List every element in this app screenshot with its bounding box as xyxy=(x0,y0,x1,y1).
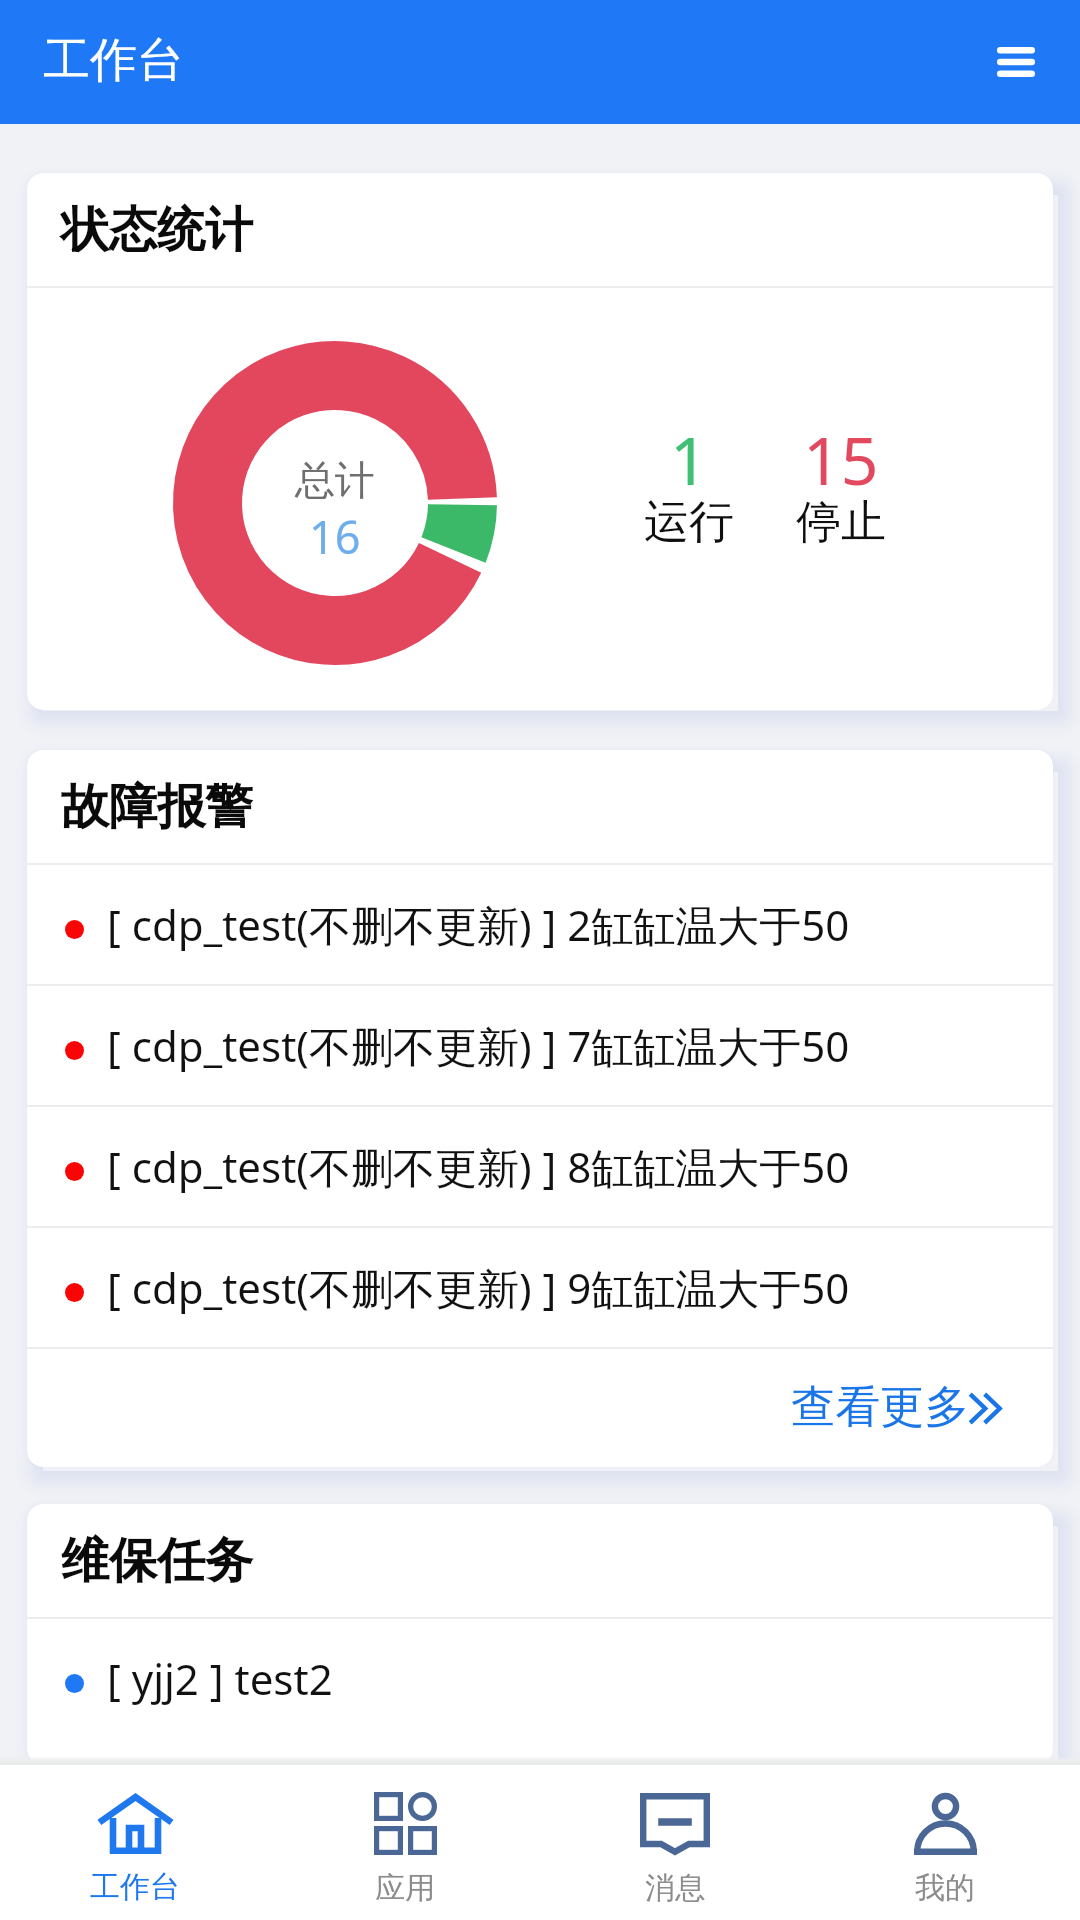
staticText: 状态统计 xyxy=(61,200,253,260)
button[interactable]: 查看更多 xyxy=(27,1349,1053,1467)
staticText: 工作台 xyxy=(43,31,184,90)
staticText: 我的 xyxy=(915,1869,975,1907)
staticText: [ cdp_test(不删不更新) ] 7缸缸温大于50 xyxy=(107,1017,850,1074)
button[interactable]: [ cdp_test(不删不更新) ] 8缸缸温大于50 xyxy=(27,1107,1053,1226)
staticText: [ yjj2 ] test2 xyxy=(107,1650,333,1707)
staticText: 停止 xyxy=(796,494,886,551)
staticText: 查看更多 xyxy=(791,1379,969,1435)
staticText: [ cdp_test(不删不更新) ] 2缸缸温大于50 xyxy=(107,896,850,953)
button[interactable]: 15 xyxy=(788,402,894,555)
button[interactable]: 应用 xyxy=(270,1765,540,1920)
button[interactable]: [ cdp_test(不删不更新) ] 9缸缸温大于50 xyxy=(27,1228,1053,1347)
staticText: 应用 xyxy=(375,1869,435,1907)
staticText: 总计 xyxy=(295,455,375,505)
staticText: 运行 xyxy=(644,494,734,551)
staticText: 15 xyxy=(803,414,879,502)
staticText: 消息 xyxy=(645,1869,705,1907)
staticText: 1 xyxy=(670,414,708,502)
staticText: [ cdp_test(不删不更新) ] 8缸缸温大于50 xyxy=(107,1138,850,1195)
button[interactable]: Menu xyxy=(980,26,1052,98)
staticText: 故障报警 xyxy=(61,777,253,837)
button[interactable]: 工作台 xyxy=(0,1765,270,1920)
button[interactable]: 消息 xyxy=(540,1765,810,1920)
button[interactable]: 我的 xyxy=(810,1765,1080,1920)
staticText: [ cdp_test(不删不更新) ] 9缸缸温大于50 xyxy=(107,1259,850,1316)
button[interactable]: [ yjj2 ] test2 xyxy=(27,1619,1053,1738)
button[interactable]: [ cdp_test(不删不更新) ] 7缸缸温大于50 xyxy=(27,986,1053,1105)
button[interactable]: [ cdp_test(不删不更新) ] 2缸缸温大于50 xyxy=(27,865,1053,984)
staticText: 16 xyxy=(309,506,361,567)
staticText: 维保任务 xyxy=(61,1531,253,1591)
staticText: 工作台 xyxy=(90,1868,180,1906)
button[interactable]: 1 xyxy=(636,402,742,555)
